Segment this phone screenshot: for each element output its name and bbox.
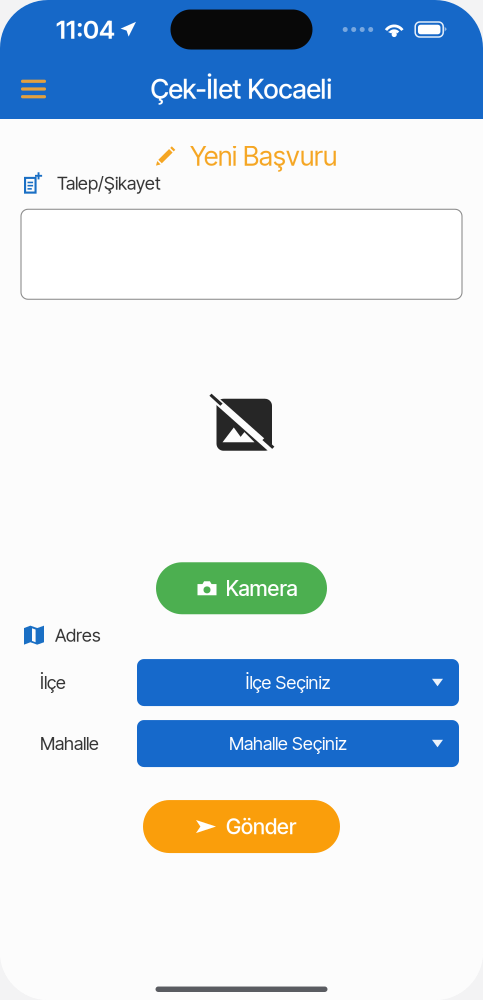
staticText: Kamera [225,575,297,601]
button[interactable]: Menu [0,69,60,108]
staticText: Çek-İlet Kocaeli [150,73,332,105]
staticText: İlçe Seçiniz [245,672,330,693]
staticText: 11:04 [56,14,115,45]
staticText: İlçe [40,672,66,693]
staticText: Yeni Başvuru [190,140,337,172]
staticText: Talep/Şikayet [57,172,161,194]
button[interactable]: İlçe Seçiniz [137,659,459,706]
staticText: Mahalle Seçiniz [229,733,347,754]
button[interactable]: Mahalle Seçiniz [137,720,459,767]
staticText: Mahalle [40,733,99,754]
staticText: Adres [55,624,101,646]
button[interactable]: Gönder [143,800,340,853]
button[interactable]: Kamera [156,562,327,614]
staticText: Gönder [226,814,296,839]
